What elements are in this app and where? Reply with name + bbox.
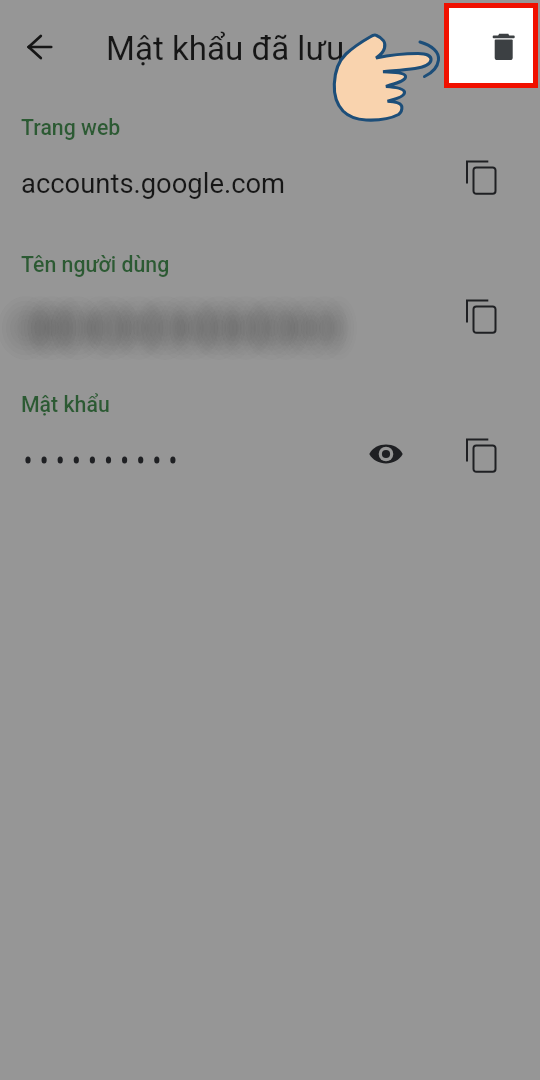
button[interactable]: Show password (364, 432, 408, 476)
button[interactable]: Delete password (449, 8, 533, 83)
staticText: accounts.google.com (21, 168, 286, 200)
button[interactable]: Copy (452, 149, 508, 205)
staticText: Mật khẩu đã lưu (106, 29, 345, 68)
staticText: Trang web (21, 115, 121, 140)
button[interactable]: Copy (452, 427, 508, 483)
button[interactable]: Back (16, 23, 64, 71)
staticText: Tên người dùng (21, 252, 170, 277)
staticText: Mật khẩu (21, 392, 110, 417)
button[interactable]: Copy (452, 288, 508, 344)
